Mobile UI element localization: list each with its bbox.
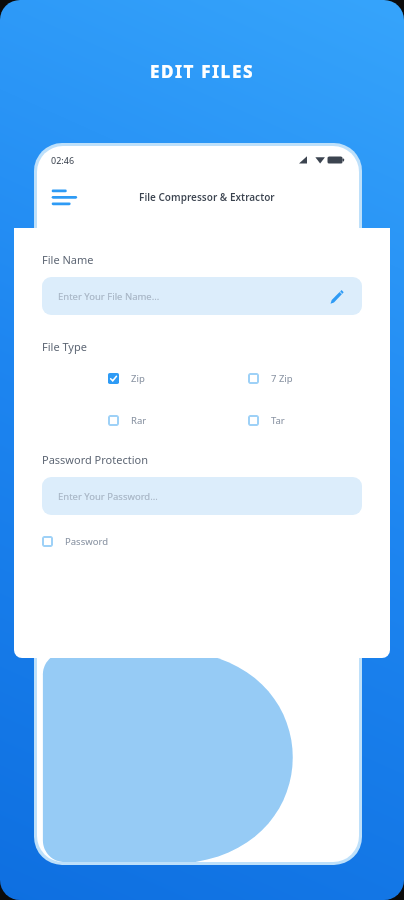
button[interactable]: Menu: [53, 186, 79, 208]
staticText: File Type: [42, 339, 87, 354]
staticText: Password: [65, 535, 108, 548]
staticText: File Name: [42, 252, 94, 267]
staticText: File Compressor & Extractor: [139, 190, 275, 204]
staticText: EDIT FILES: [0, 60, 404, 83]
staticText: Password Protection: [42, 452, 148, 467]
button[interactable]: Tar: [248, 410, 362, 430]
button[interactable]: 7 Zip: [248, 368, 362, 388]
staticText: Zip: [131, 372, 145, 385]
staticText: Rar: [131, 414, 147, 427]
staticText: Tar: [271, 414, 285, 427]
button[interactable]: Enter Your File Name...: [42, 277, 362, 315]
button[interactable]: Edit file name: [326, 286, 346, 306]
button[interactable]: Rar: [108, 410, 248, 430]
button[interactable]: Password: [42, 531, 362, 551]
staticText: 02:46: [51, 154, 75, 166]
button[interactable]: Enter Your Password...: [42, 477, 362, 515]
staticText: 7 Zip: [271, 372, 293, 385]
button[interactable]: Zip: [108, 368, 248, 388]
staticText: Enter Your Password...: [58, 490, 158, 503]
staticText: Enter Your File Name...: [58, 290, 160, 303]
